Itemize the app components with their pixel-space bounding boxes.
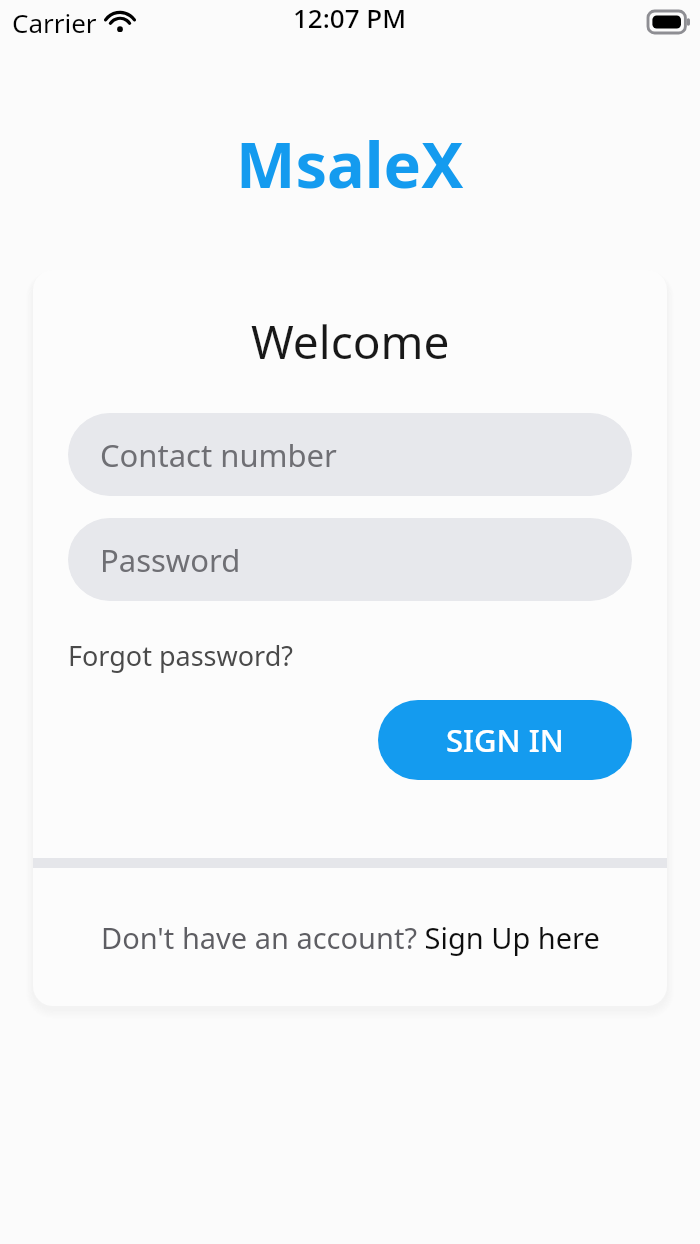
- button[interactable]: SIGN IN: [378, 700, 632, 780]
- staticText: Carrier: [12, 5, 97, 40]
- staticText: Password: [100, 539, 241, 581]
- button[interactable]: Contact number: [68, 413, 632, 496]
- button[interactable]: Password: [68, 518, 632, 601]
- staticText: Don't have an account? Sign Up here: [101, 918, 600, 957]
- staticText: MsaleX: [236, 121, 464, 207]
- button[interactable]: Don't have an account? Sign Up here: [33, 868, 667, 1006]
- staticText: SIGN IN: [446, 719, 564, 761]
- staticText: Welcome: [251, 310, 450, 373]
- other: Battery full: [648, 11, 690, 33]
- staticText: Contact number: [100, 434, 337, 476]
- other: Wi-Fi signal: [106, 12, 134, 34]
- button[interactable]: Forgot password?: [66, 633, 296, 678]
- staticText: 12:07 PM: [293, 0, 407, 35]
- staticText: Forgot password?: [68, 637, 294, 674]
